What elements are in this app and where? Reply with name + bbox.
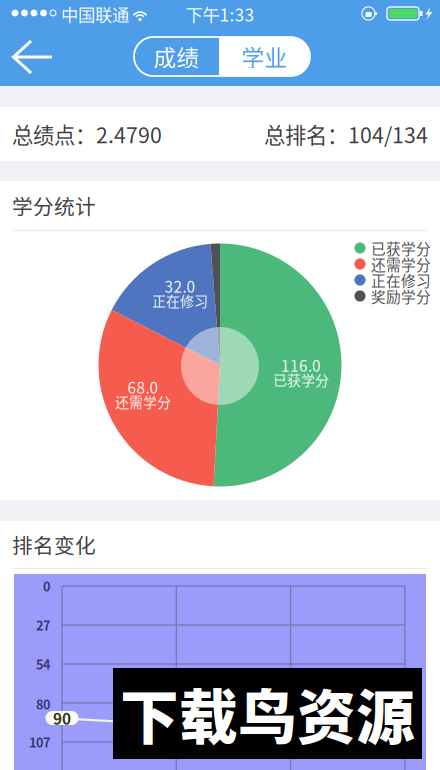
- staticText: 中国联通: [61, 1, 129, 27]
- staticText: 总绩点：2.4790: [12, 119, 162, 149]
- staticText: 80: [36, 695, 50, 713]
- staticText: 成绩: [153, 40, 199, 73]
- staticText: 正在修习: [152, 290, 208, 311]
- staticText: 奖励学分: [371, 285, 431, 307]
- staticText: 已获学分: [371, 237, 431, 259]
- staticText: 学业: [241, 40, 287, 73]
- staticText: 32.0: [164, 275, 195, 297]
- staticText: 68.0: [127, 376, 158, 398]
- staticText: 正在修习: [371, 269, 431, 291]
- button[interactable]: 返回: [0, 28, 66, 86]
- staticText: 总排名：104/134: [264, 119, 428, 149]
- staticText: 排名变化: [12, 529, 96, 559]
- staticText: 还需学分: [115, 391, 171, 412]
- button[interactable]: 学业: [219, 37, 310, 76]
- staticText: 107: [29, 733, 50, 751]
- staticText: 90: [53, 707, 71, 729]
- staticText: 54: [36, 655, 50, 673]
- staticText: 116.0: [281, 354, 321, 376]
- staticText: 学分统计: [12, 190, 96, 220]
- staticText: 下载鸟资源: [120, 671, 415, 756]
- staticText: 已获学分: [273, 369, 329, 390]
- button[interactable]: 成绩: [134, 37, 219, 76]
- staticText: 下午1:33: [185, 1, 254, 27]
- staticText: 还需学分: [371, 253, 431, 275]
- staticText: 0: [43, 577, 50, 595]
- staticText: 27: [36, 616, 50, 634]
